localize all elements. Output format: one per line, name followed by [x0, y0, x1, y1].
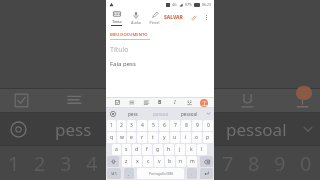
button[interactable]: b — [165, 156, 175, 167]
button[interactable]: z — [122, 156, 131, 167]
button[interactable]: l — [197, 144, 207, 155]
button[interactable]: n — [176, 156, 186, 167]
button[interactable]: g — [153, 144, 163, 155]
button[interactable]: Itálico — [169, 98, 181, 107]
staticText: Áudio — [131, 20, 141, 25]
staticText: Título — [110, 45, 129, 55]
staticText: . — [191, 171, 193, 176]
staticText: x — [136, 158, 139, 165]
button[interactable]: Enter — [200, 168, 213, 179]
button[interactable]: Áudio — [128, 10, 143, 26]
button[interactable]: h — [164, 144, 174, 155]
button[interactable]: w — [117, 132, 126, 143]
button[interactable]: y — [159, 132, 169, 143]
staticText: 06:23 — [202, 2, 211, 7]
button[interactable]: pessoa — [147, 108, 175, 119]
button[interactable]: i — [181, 132, 191, 143]
button[interactable]: u — [170, 132, 180, 143]
button[interactable]: Anexar — [188, 12, 199, 23]
button[interactable]: Lista com marcadores — [125, 98, 137, 107]
staticText: m — [190, 158, 195, 165]
staticText: 7 — [222, 150, 234, 177]
staticText: t — [152, 134, 154, 141]
button[interactable]: d — [132, 144, 141, 155]
button[interactable]: v — [154, 156, 164, 167]
staticText: pessoa — [153, 111, 169, 117]
staticText: h — [167, 146, 171, 153]
staticText: 3 — [130, 122, 133, 129]
button[interactable]: a — [112, 144, 121, 155]
staticText: w — [120, 134, 124, 141]
staticText: B — [158, 99, 162, 106]
staticText: Fala pess — [110, 60, 136, 68]
staticText: I — [174, 99, 176, 106]
staticText: pess — [128, 111, 138, 117]
staticText: 4 — [141, 122, 144, 129]
staticText: l — [201, 146, 203, 153]
staticText: p — [206, 134, 210, 141]
button[interactable]: q — [107, 132, 116, 143]
button[interactable]: Shift — [107, 156, 119, 167]
button[interactable]: pess — [119, 108, 147, 119]
button[interactable]: o — [192, 132, 202, 143]
staticText: MEU DOCUMENTO — [110, 32, 148, 38]
staticText: y — [163, 134, 166, 141]
staticText: j — [179, 146, 181, 153]
button[interactable]: Lista de verificação — [111, 98, 123, 107]
button[interactable]: 6 — [159, 120, 169, 131]
staticText: v — [158, 158, 161, 165]
button[interactable]: 7 — [170, 120, 180, 131]
button[interactable]: 5 — [148, 120, 158, 131]
staticText: 3 — [60, 150, 72, 177]
button[interactable]: !#1 — [107, 168, 121, 179]
staticText: g — [156, 146, 160, 153]
button[interactable]: m — [187, 156, 197, 167]
staticText: d — [135, 146, 139, 153]
button[interactable]: t — [148, 132, 158, 143]
staticText: 8 — [185, 122, 188, 129]
button[interactable]: p — [203, 132, 213, 143]
button[interactable]: 4 — [137, 120, 147, 131]
button[interactable]: e — [127, 132, 136, 143]
button[interactable]: pessoal — [175, 108, 203, 119]
button[interactable]: Apagar — [200, 156, 213, 167]
staticText: e — [130, 134, 133, 141]
button[interactable]: 0 — [203, 120, 213, 131]
button[interactable]: Alinhar — [140, 98, 152, 107]
button[interactable]: r — [137, 132, 147, 143]
staticText: q — [110, 134, 114, 141]
button[interactable]: Mais sugestões — [203, 108, 214, 119]
staticText: 1 — [8, 150, 20, 177]
button[interactable]: 9 — [192, 120, 202, 131]
button[interactable]: 1 — [107, 120, 116, 131]
button[interactable]: MEU DOCUMENTO — [110, 32, 148, 38]
button[interactable]: SALVAR — [162, 12, 185, 23]
button[interactable]: Texto — [109, 9, 124, 27]
staticText: Texto — [112, 19, 122, 24]
button[interactable]: f — [142, 144, 152, 155]
button[interactable]: s — [122, 144, 131, 155]
button[interactable]: Negrito — [154, 98, 166, 107]
button[interactable]: , — [124, 168, 134, 179]
button[interactable]: Mais opções — [201, 12, 211, 23]
button[interactable]: j — [175, 144, 185, 155]
button[interactable]: Português (BR) — [137, 168, 184, 179]
staticText: 9 — [196, 122, 199, 129]
button[interactable]: 3 — [127, 120, 136, 131]
button[interactable]: Pincel — [147, 10, 162, 26]
staticText: SALVAR — [164, 14, 183, 21]
button[interactable]: x — [132, 156, 142, 167]
staticText: 0 — [300, 150, 312, 177]
staticText: 4G — [172, 2, 177, 7]
staticText: 5 — [152, 122, 155, 129]
button[interactable]: Sublinhado — [183, 98, 195, 107]
button[interactable]: Configurações do teclado — [106, 108, 119, 119]
button[interactable]: 2 — [117, 120, 126, 131]
button[interactable]: k — [186, 144, 196, 155]
staticText: u — [173, 134, 177, 141]
button[interactable]: 8 — [181, 120, 191, 131]
button[interactable]: c — [143, 156, 153, 167]
staticText: 97% — [185, 2, 192, 7]
button[interactable]: Cor do texto — [198, 98, 210, 107]
